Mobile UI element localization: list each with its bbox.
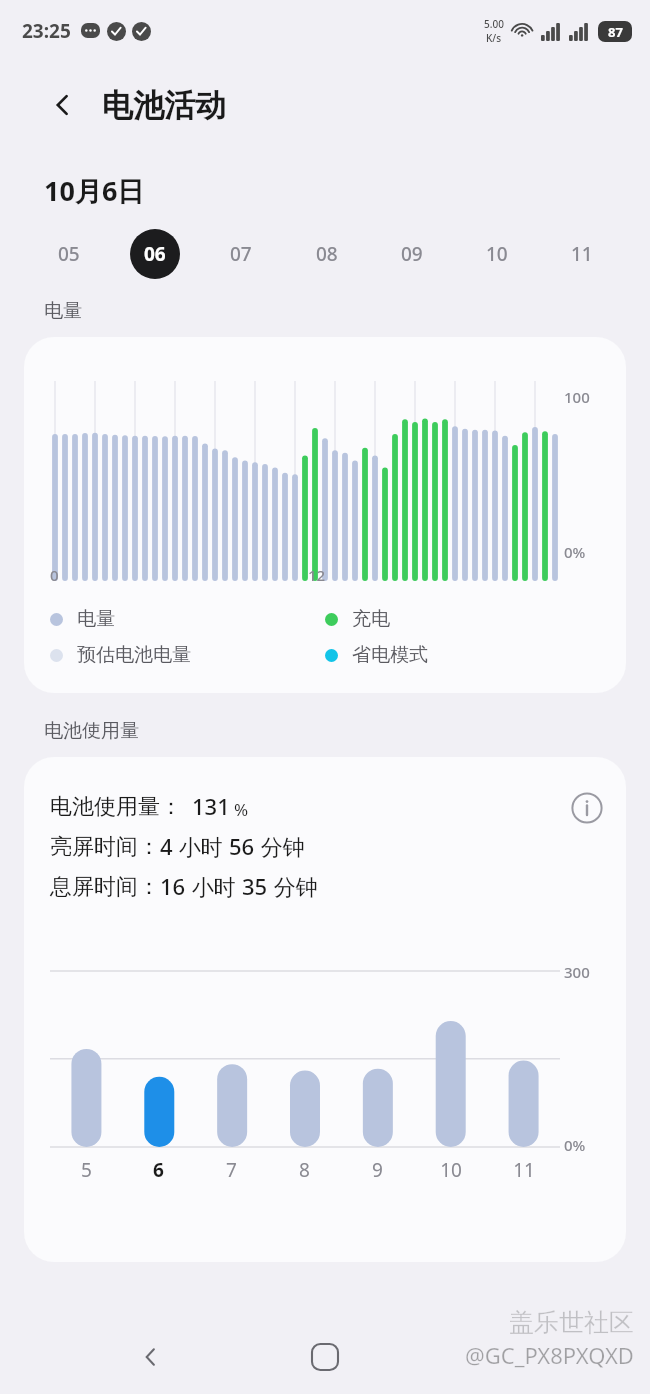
button[interactable]: 07	[198, 227, 284, 281]
button[interactable]: Back	[124, 1330, 178, 1384]
staticText: 87	[608, 23, 623, 41]
staticText: 充电	[352, 607, 390, 631]
staticText: K/s	[486, 31, 502, 45]
staticText: 电池使用量	[44, 719, 139, 743]
staticText: 9	[372, 1157, 383, 1183]
staticText: 0%	[564, 1135, 586, 1155]
staticText: 0%	[564, 542, 586, 562]
staticText: 11	[513, 1157, 535, 1183]
button[interactable]: Back	[40, 82, 86, 128]
staticText: 05	[58, 241, 80, 267]
staticText: 小时	[186, 871, 242, 901]
staticText: 300	[564, 962, 590, 982]
staticText: 省电模式	[352, 643, 428, 667]
staticText: 5.00	[484, 17, 504, 31]
staticText: 10	[440, 1157, 462, 1183]
button[interactable]: 11	[539, 227, 624, 281]
button[interactable]: 10	[454, 227, 539, 281]
button[interactable]: 05	[26, 227, 112, 281]
staticText: 小时	[173, 831, 229, 861]
button[interactable]: 06	[112, 227, 198, 281]
staticText: 06	[144, 241, 166, 267]
staticText: 6	[153, 1157, 164, 1183]
staticText: 100	[564, 387, 590, 407]
staticText: @GC_PX8PXQXD	[465, 1340, 634, 1370]
staticText: 0	[50, 565, 59, 585]
staticText: 12	[308, 565, 326, 585]
staticText: 11	[571, 241, 593, 267]
staticText: 16	[160, 871, 186, 901]
button[interactable]: Info	[564, 785, 610, 831]
staticText: 35	[242, 871, 268, 901]
staticText: 分钟	[268, 871, 318, 901]
staticText: 亮屏时间：	[50, 833, 160, 861]
staticText: 8	[299, 1157, 310, 1183]
staticText: 23:25	[22, 18, 71, 44]
staticText: 分钟	[255, 831, 305, 861]
button[interactable]: 09	[369, 227, 454, 281]
staticText: 10	[486, 241, 508, 267]
staticText: 电池使用量：	[50, 793, 182, 821]
button[interactable]: Home	[298, 1330, 352, 1384]
staticText: 息屏时间：	[50, 873, 160, 901]
staticText: 预估电池电量	[77, 643, 191, 667]
staticText: 09	[401, 241, 423, 267]
staticText: %	[234, 798, 249, 821]
staticText: 5	[81, 1157, 92, 1183]
button[interactable]: 100	[24, 337, 626, 693]
button[interactable]: 08	[284, 227, 369, 281]
staticText: 08	[316, 241, 338, 267]
staticText: 电池活动	[102, 86, 226, 125]
staticText: 56	[229, 831, 255, 861]
staticText: 07	[230, 241, 252, 267]
staticText: 7	[226, 1157, 237, 1183]
staticText: 电量	[44, 299, 82, 323]
staticText: 131	[192, 791, 230, 821]
staticText: 4	[160, 831, 173, 861]
staticText: 10月6日	[44, 172, 145, 209]
staticText: 盖乐世社区	[509, 1307, 634, 1338]
staticText: 电量	[77, 607, 115, 631]
